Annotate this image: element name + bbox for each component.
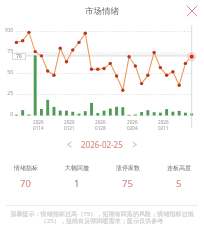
staticText: 0204 [127,125,138,131]
staticText: 1 [74,177,80,190]
staticText: 50 [0,69,13,76]
staticText: 0 [0,111,13,118]
staticText: 2026 [64,119,75,125]
staticText: 2026 [127,119,138,125]
staticText: 0128 [95,125,106,131]
button[interactable]: Next day [128,138,141,151]
button[interactable]: 涨停家数 [102,164,153,190]
button[interactable]: 大幅回撤 [51,164,102,190]
staticText: 2026 [33,119,44,125]
staticText: 75 [0,48,13,55]
button[interactable]: 连板高度 [153,164,204,190]
staticText: 温馨提示：情绪指标过高（75），短期有回落的风险；情绪指标过低（25），短线有反… [2,209,202,224]
staticText: 70 [20,177,31,190]
staticText: 100 [0,27,13,34]
staticText: 2026-02-25 [81,139,123,150]
staticText: 0114 [33,125,44,131]
staticText: 0211 [158,125,169,131]
staticText: 大幅回撤 [65,164,89,172]
staticText: 市场情绪 [0,6,204,17]
staticText: 涨停家数 [116,164,140,172]
staticText: 情绪指标 [14,164,38,172]
staticText: 70 [16,53,22,60]
staticText: 75 [122,177,133,190]
button[interactable]: 情绪指标 [0,164,51,190]
button[interactable]: Close [184,3,200,19]
staticText: 5 [176,177,182,190]
staticText: 连板高度 [167,164,191,172]
staticText: 2026 [158,119,169,125]
staticText: 0121 [64,125,75,131]
staticText: 2026 [95,119,106,125]
button[interactable]: Previous day [63,138,76,151]
staticText: 25 [0,90,13,97]
